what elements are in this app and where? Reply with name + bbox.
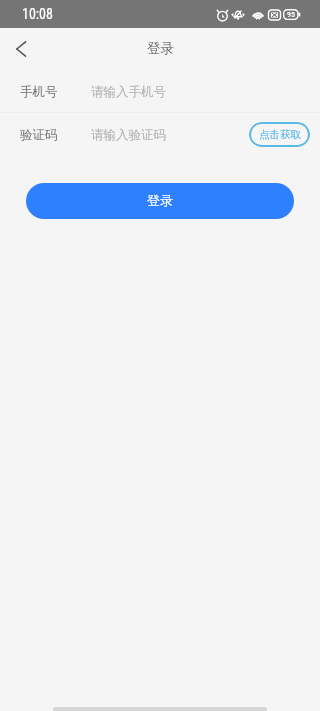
staticText: 手机号 xyxy=(20,84,58,100)
staticText: 请输入验证码 xyxy=(91,127,166,143)
staticText: 10:08 xyxy=(22,6,53,22)
button[interactable]: 登录 xyxy=(26,183,294,219)
staticText: 验证码 xyxy=(20,127,58,143)
staticText: 95 xyxy=(287,10,295,19)
staticText: 登录 xyxy=(147,192,173,208)
button[interactable]: 点击获取 xyxy=(249,122,310,147)
staticText: 点击获取 xyxy=(259,128,301,141)
staticText: 登录 xyxy=(147,40,174,57)
staticText: 请输入手机号 xyxy=(91,84,166,100)
button[interactable]: Back xyxy=(0,28,42,70)
